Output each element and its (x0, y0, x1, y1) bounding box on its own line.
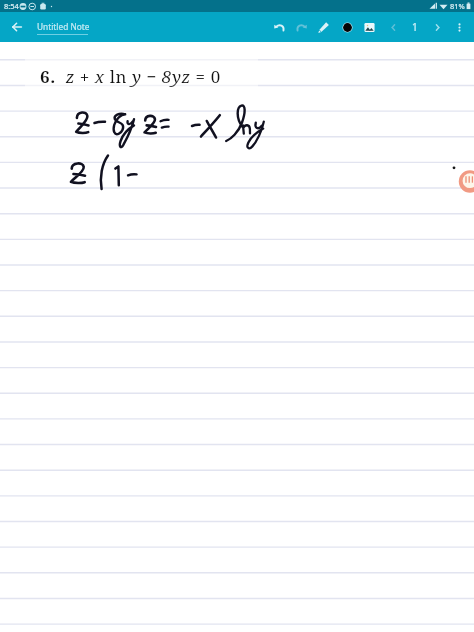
button[interactable]: Pen (312, 14, 334, 40)
button[interactable]: Pen colour (336, 14, 358, 40)
staticText: 8:54 (4, 1, 19, 11)
staticText: 1 (412, 20, 418, 34)
button[interactable]: 1 (404, 14, 426, 40)
button[interactable]: Previous page (382, 14, 404, 40)
button[interactable]: Note canvas (0, 42, 474, 632)
staticText: Untitled Note (37, 21, 90, 32)
button[interactable]: Untitled Note (37, 21, 90, 35)
button[interactable]: Insert image (358, 14, 380, 40)
button[interactable]: Back (7, 17, 27, 37)
button[interactable]: Undo (268, 14, 290, 40)
button[interactable]: Redo (290, 14, 312, 40)
staticText: 81% (450, 1, 465, 11)
button[interactable]: More options (448, 14, 470, 40)
staticText: 6. z + x ln y − 8yz = 0 (40, 65, 221, 88)
button[interactable]: Next page (426, 14, 448, 40)
